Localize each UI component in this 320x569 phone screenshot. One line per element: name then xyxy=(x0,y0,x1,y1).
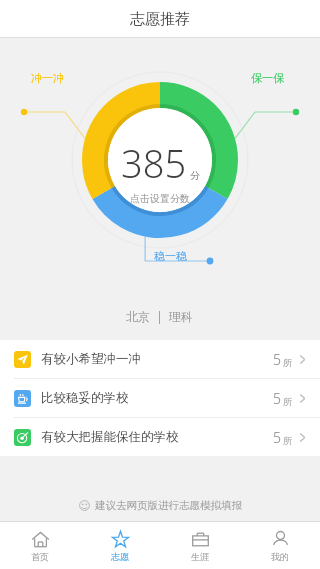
button[interactable]: 有较大把握能保住的学校 xyxy=(0,418,320,456)
staticText: 有较小希望冲一冲 xyxy=(41,351,141,367)
staticText: 我的 xyxy=(271,551,289,562)
staticText: 5 xyxy=(273,428,281,447)
staticText: 有较大把握能保住的学校 xyxy=(41,429,179,445)
staticText: 点击设置分数 xyxy=(130,192,190,205)
staticText: 比较稳妥的学校 xyxy=(41,390,129,406)
staticText: 志愿 xyxy=(111,551,129,562)
staticText: 保一保 xyxy=(251,71,284,85)
staticText: 所 xyxy=(283,357,292,368)
staticText: 稳一稳 xyxy=(154,249,187,263)
staticText: 分 xyxy=(190,169,200,182)
staticText: 所 xyxy=(283,435,292,446)
staticText: 5 xyxy=(273,389,281,408)
staticText: 生涯 xyxy=(191,551,209,562)
staticText: 志愿推荐 xyxy=(130,10,190,29)
staticText: 385 xyxy=(121,137,187,189)
staticText: 首页 xyxy=(31,551,49,562)
button[interactable]: 生涯 xyxy=(160,522,240,569)
button[interactable]: 我的 xyxy=(240,522,320,569)
staticText: 冲一冲 xyxy=(31,71,64,85)
staticText: 所 xyxy=(283,396,292,407)
button[interactable]: 志愿 xyxy=(80,522,160,569)
staticText: 北京 | 理科 xyxy=(126,308,194,324)
button[interactable]: 比较稳妥的学校 xyxy=(0,379,320,417)
button[interactable]: 首页 xyxy=(0,522,80,569)
staticText: 建议去网页版进行志愿模拟填报 xyxy=(95,499,242,512)
button[interactable]: 385 xyxy=(0,137,320,205)
button[interactable]: 有较小希望冲一冲 xyxy=(0,340,320,378)
staticText: 5 xyxy=(273,350,281,369)
